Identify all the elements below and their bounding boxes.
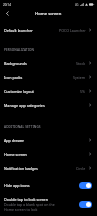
button[interactable]: Customize layout bbox=[0, 84, 97, 98]
staticText: Icon packs bbox=[4, 75, 23, 80]
staticText: Hide app icons bbox=[4, 183, 30, 188]
staticText: Double tap to lock screen bbox=[4, 197, 48, 202]
staticText: Stock bbox=[76, 61, 86, 66]
staticText: Home screen bbox=[35, 11, 62, 17]
button[interactable]: Hide app icons bbox=[0, 178, 97, 192]
button[interactable]: Backgrounds bbox=[0, 56, 97, 70]
staticText: 4G bbox=[75, 3, 79, 7]
staticText: Customize layout bbox=[4, 89, 34, 94]
staticText: POCO Launcher bbox=[59, 28, 86, 33]
button[interactable]: Back bbox=[0, 9, 14, 18]
staticText: PERSONALIZATION bbox=[4, 48, 35, 52]
button[interactable]: Notification badges bbox=[0, 161, 97, 175]
staticText: Manage app categories bbox=[4, 103, 45, 108]
staticText: Double tap a blank spot on the Home scre… bbox=[4, 202, 61, 212]
button[interactable]: Double tap to lock screen bbox=[0, 192, 97, 216]
staticText: 5% bbox=[80, 89, 86, 94]
staticText: Backgrounds bbox=[4, 61, 27, 66]
staticText: System bbox=[73, 75, 86, 80]
button[interactable]: Manage app categories bbox=[0, 98, 97, 112]
staticText: Default launcher bbox=[4, 28, 33, 33]
staticText: Circle bbox=[76, 166, 86, 171]
button[interactable]: Icon packs bbox=[0, 70, 97, 84]
staticText: Home screen bbox=[4, 152, 27, 157]
button[interactable]: Home screen bbox=[0, 147, 97, 161]
staticText: Notification badges bbox=[4, 166, 38, 171]
staticText: App drawer bbox=[4, 138, 25, 143]
staticText: 20:14 bbox=[3, 3, 11, 7]
button[interactable]: App drawer bbox=[0, 133, 97, 147]
staticText: ADDITIONAL SETTINGS bbox=[4, 125, 41, 129]
button[interactable]: Default launcher bbox=[0, 23, 97, 37]
